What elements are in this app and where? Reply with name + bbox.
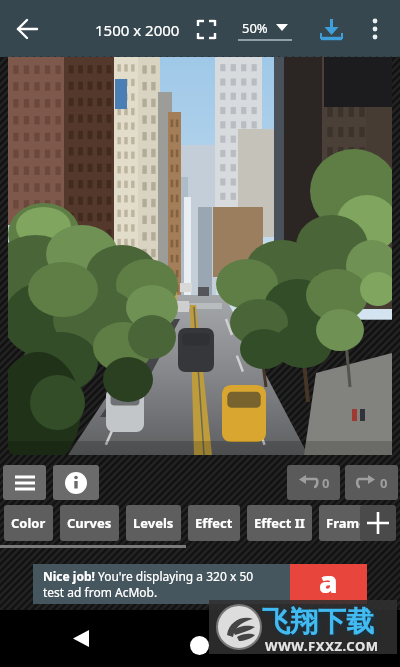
staticText: Effect II <box>254 514 305 532</box>
button[interactable]: Curves <box>60 505 119 541</box>
button[interactable] <box>320 18 343 41</box>
staticText: 1500 x 2000 <box>95 20 180 40</box>
staticText: 0 <box>322 474 330 492</box>
staticText: WWW.FXXZ.COM <box>265 637 379 655</box>
button[interactable]: 0 <box>345 465 398 500</box>
staticText: Color <box>11 514 46 532</box>
staticText: a <box>319 561 338 601</box>
staticText: 50% <box>242 19 268 37</box>
button[interactable] <box>197 20 216 39</box>
staticText: Effect <box>195 514 233 532</box>
button[interactable]: 0 <box>287 465 340 500</box>
button[interactable] <box>366 17 384 41</box>
button[interactable] <box>16 17 40 41</box>
button[interactable] <box>73 630 89 647</box>
staticText: 0 <box>380 474 388 492</box>
button[interactable]: Levels <box>126 505 181 541</box>
button[interactable] <box>360 505 396 541</box>
staticText: Curves <box>67 514 112 532</box>
staticText: Frame <box>326 514 367 532</box>
button[interactable] <box>3 465 46 500</box>
staticText: Levels <box>133 514 174 532</box>
staticText: 飞翔下载 <box>262 604 374 639</box>
button[interactable]: Effect <box>188 505 240 541</box>
button[interactable]: Effect II <box>247 505 312 541</box>
button[interactable]: 50% <box>238 14 294 44</box>
button[interactable] <box>53 465 99 500</box>
staticText: test ad from AcMob. <box>43 584 158 600</box>
staticText: Nice job! You're displaying a 320 x 50 <box>43 568 254 584</box>
button[interactable]: Frame <box>319 505 374 541</box>
button[interactable] <box>190 636 209 655</box>
button[interactable]: Color <box>4 505 53 541</box>
button[interactable]: Nice job! You're displaying a 320 x 50 <box>33 564 367 604</box>
